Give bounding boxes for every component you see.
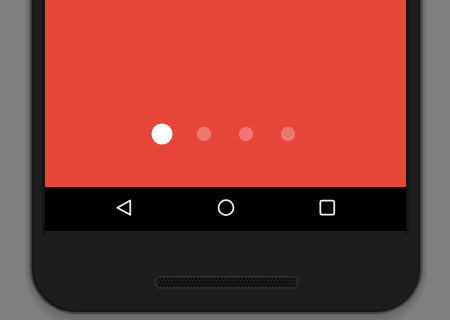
button[interactable]: Recent apps bbox=[305, 187, 348, 231]
button[interactable]: Home bbox=[204, 187, 247, 231]
button[interactable]: Go to page bbox=[267, 113, 309, 155]
button[interactable]: Go to page bbox=[183, 113, 225, 155]
button[interactable]: Page 1, current bbox=[141, 113, 183, 155]
button[interactable]: Go to page bbox=[225, 113, 267, 155]
button[interactable]: Back bbox=[102, 187, 145, 231]
